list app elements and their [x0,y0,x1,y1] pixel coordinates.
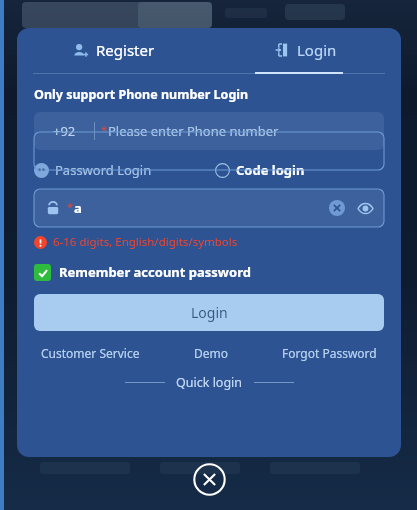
staticText: * [67,199,74,214]
staticText: Customer Service [41,345,140,361]
button[interactable]: Password Login [34,161,152,179]
staticText: * [101,122,108,137]
staticText: Login [297,40,337,60]
staticText: Remember account password [59,263,251,281]
button[interactable]: Remember account password [34,263,251,281]
staticText: Demo [194,345,229,361]
staticText: Login [191,303,228,322]
staticText: Please enter Phone number [108,122,279,140]
button[interactable]: Forgot Password [282,345,377,361]
staticText: Forgot Password [282,345,377,361]
staticText: Password Login [55,161,152,179]
button[interactable]: Login [209,28,401,72]
button[interactable]: Customer Service [41,345,140,361]
button[interactable]: +92 [34,112,384,150]
staticText: Quick login [176,374,243,391]
button[interactable]: * [34,189,384,227]
button[interactable]: Code login [215,161,305,179]
button[interactable]: Register [17,28,209,72]
staticText: 6-16 digits, English/digits/symbols [53,234,238,250]
button[interactable]: Show password [352,195,378,221]
button[interactable]: Close [190,460,228,498]
button[interactable]: Demo [194,345,229,361]
staticText: Register [96,40,155,60]
button[interactable]: Login [34,294,384,331]
staticText: Only support Phone number Login [34,86,249,103]
staticText: a [74,199,82,217]
button[interactable]: Clear password [324,195,350,221]
staticText: +92 [53,122,76,140]
staticText: Code login [236,161,305,179]
